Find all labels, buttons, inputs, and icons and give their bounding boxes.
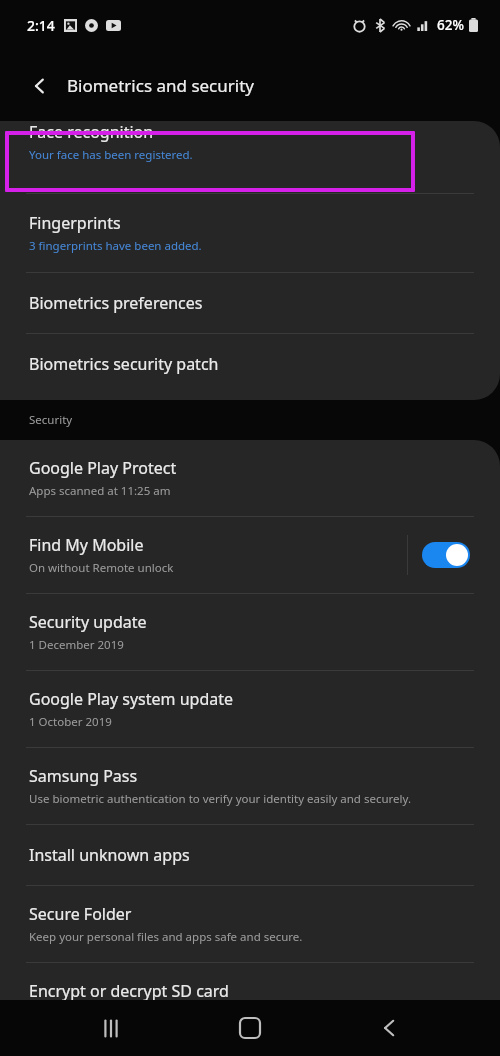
button[interactable]: Fingerprints bbox=[0, 194, 500, 272]
staticText: Install unknown apps bbox=[29, 844, 190, 866]
button[interactable]: Find My Mobile toggle, on bbox=[422, 542, 470, 568]
staticText: 3 fingerprints have been added. bbox=[29, 238, 202, 254]
button[interactable]: Back bbox=[361, 1000, 417, 1056]
staticText: Secure Folder bbox=[29, 903, 132, 925]
staticText: Samsung Pass bbox=[29, 765, 138, 787]
button[interactable]: Install unknown apps bbox=[0, 825, 500, 885]
staticText: Security update bbox=[29, 611, 147, 633]
staticText: 2:14 bbox=[27, 16, 55, 35]
button[interactable]: Back bbox=[20, 66, 60, 106]
button[interactable]: Biometrics security patch bbox=[0, 334, 500, 394]
staticText: Face recognition bbox=[29, 121, 154, 143]
staticText: 1 October 2019 bbox=[29, 714, 112, 730]
staticText: Google Play system update bbox=[29, 688, 234, 710]
staticText: Google Play Protect bbox=[29, 457, 177, 479]
staticText: 62% bbox=[437, 16, 464, 34]
staticText: Encrypt or decrypt SD card bbox=[29, 980, 229, 1002]
button[interactable]: Security update bbox=[0, 594, 500, 670]
staticText: Fingerprints bbox=[29, 212, 121, 234]
staticText: Biometrics preferences bbox=[29, 292, 203, 314]
button[interactable]: Google Play system update bbox=[0, 671, 500, 747]
staticText: Biometrics security patch bbox=[29, 353, 219, 375]
button[interactable]: Google Play Protect bbox=[0, 440, 500, 516]
staticText: Keep your personal files and apps safe a… bbox=[29, 929, 303, 945]
staticText: Use biometric authentication to verify y… bbox=[29, 791, 411, 807]
button[interactable]: Samsung Pass bbox=[0, 748, 500, 824]
staticText: On without Remote unlock bbox=[29, 560, 174, 576]
button[interactable]: Find My Mobile bbox=[0, 517, 500, 593]
staticText: Your face has been registered. bbox=[29, 147, 193, 163]
button[interactable]: Secure Folder bbox=[0, 886, 500, 962]
staticText: Security bbox=[29, 412, 73, 428]
staticText: 1 December 2019 bbox=[29, 637, 124, 653]
staticText: Biometrics and security bbox=[67, 74, 254, 97]
button[interactable]: Encrypt or decrypt SD card bbox=[0, 963, 500, 1039]
button[interactable]: Home bbox=[222, 1000, 278, 1056]
button[interactable]: Recent apps bbox=[83, 1000, 139, 1056]
staticText: Apps scanned at 11:25 am bbox=[29, 483, 171, 499]
button[interactable]: Face recognition bbox=[0, 121, 500, 193]
button[interactable]: Biometrics preferences bbox=[0, 273, 500, 333]
staticText: Find My Mobile bbox=[29, 534, 144, 556]
